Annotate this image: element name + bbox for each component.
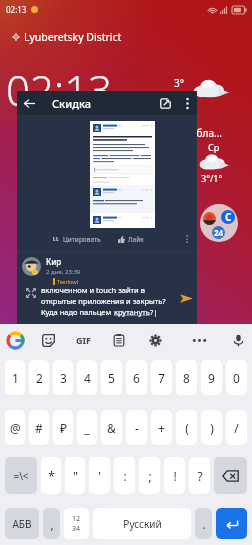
button[interactable]: / xyxy=(226,410,247,445)
button[interactable]: 5 xyxy=(101,360,122,395)
button[interactable]: : xyxy=(114,457,135,494)
staticText: Ср xyxy=(208,141,220,153)
button[interactable]: Back xyxy=(17,91,41,115)
button[interactable]: 9 xyxy=(201,360,222,395)
staticText: крутануть xyxy=(114,307,150,317)
button[interactable]: ) xyxy=(201,410,222,445)
button[interactable]: ! xyxy=(164,457,185,494)
button[interactable]: Русский xyxy=(93,508,191,539)
staticText: - xyxy=(135,420,139,436)
button[interactable]: Expand xyxy=(23,285,39,301)
staticText: @ xyxy=(10,420,21,436)
staticText: ( xyxy=(185,420,189,436)
button[interactable]: Send xyxy=(177,289,195,307)
button[interactable]: Цитировать xyxy=(51,234,103,245)
button[interactable]: . xyxy=(195,508,212,539)
staticText: GIF xyxy=(76,334,91,346)
button[interactable]: 0 xyxy=(226,360,247,395)
staticText: Lyuberetsky District xyxy=(24,30,122,44)
staticText: " xyxy=(73,468,78,484)
button[interactable]: Clipboard xyxy=(101,324,136,356)
staticText: 9 xyxy=(208,370,215,386)
staticText: Русский xyxy=(123,517,162,531)
button[interactable]: 2 xyxy=(29,360,49,395)
button[interactable]: Message options xyxy=(181,233,193,245)
staticText: Кир xyxy=(46,256,62,267)
button[interactable]: 7 xyxy=(151,360,172,395)
button[interactable]: ( xyxy=(176,410,197,445)
staticText: 2 дня, 23:39 xyxy=(46,268,81,276)
staticText: 1 xyxy=(12,370,19,386)
staticText: 3°/1° xyxy=(201,172,223,184)
staticText: 3 xyxy=(60,370,67,386)
button[interactable]: Google xyxy=(0,324,31,356)
button[interactable]: Settings xyxy=(136,324,174,356)
staticText: включенном и touch зайти в xyxy=(41,285,145,295)
staticText: 8 xyxy=(183,370,190,386)
button[interactable]: Backspace xyxy=(214,457,247,494)
staticText: ; xyxy=(148,468,152,484)
button[interactable]: ₽ xyxy=(53,410,73,445)
staticText: ! xyxy=(173,468,177,484)
button[interactable]: " xyxy=(65,457,85,494)
staticText: 02:13 xyxy=(6,4,27,15)
staticText: Tserkovl xyxy=(57,278,79,285)
staticText: 4 xyxy=(84,370,91,386)
staticText: + xyxy=(158,420,165,436)
button[interactable]: More options xyxy=(177,93,197,113)
button[interactable]: Лайк xyxy=(116,234,146,245)
button[interactable]: _ xyxy=(77,410,97,445)
button[interactable]: =\< xyxy=(5,457,37,494)
button[interactable]: ' xyxy=(89,457,110,494)
staticText: Лайк xyxy=(128,235,144,244)
button[interactable]: 3 xyxy=(53,360,73,395)
staticText: Цитировать xyxy=(63,235,101,244)
staticText: : xyxy=(123,468,127,484)
button[interactable]: App folder xyxy=(200,204,238,242)
staticText: ? xyxy=(197,468,203,484)
button[interactable]: 8 xyxy=(176,360,197,395)
button[interactable]: @ xyxy=(5,410,25,445)
staticText: / xyxy=(234,420,239,436)
staticText: C xyxy=(225,210,232,224)
staticText: 24 xyxy=(214,227,224,238)
staticText: ?| xyxy=(150,307,158,317)
button[interactable]: More xyxy=(174,324,224,356)
button[interactable]: ? xyxy=(189,457,210,494)
button[interactable]: АБВ xyxy=(5,508,39,539)
staticText: , xyxy=(50,516,54,532)
button[interactable]: * xyxy=(41,457,61,494)
button[interactable]: 6 xyxy=(126,360,147,395)
button[interactable]: ; xyxy=(139,457,160,494)
button[interactable]: 12 xyxy=(64,508,89,539)
staticText: ) xyxy=(210,420,214,436)
staticText: * xyxy=(48,468,55,484)
button[interactable]: Emoji xyxy=(31,324,66,356)
button[interactable]: GIF xyxy=(66,324,101,356)
button[interactable]: Voice input xyxy=(224,324,252,356)
button[interactable]: + xyxy=(151,410,172,445)
button[interactable]: # xyxy=(29,410,49,445)
button[interactable]: & xyxy=(101,410,122,445)
staticText: открытые приложения и закрыть? xyxy=(41,296,166,306)
staticText: Обла... xyxy=(189,126,223,140)
button[interactable]: Share xyxy=(153,91,177,115)
staticText: АБВ xyxy=(12,517,32,531)
staticText: =\< xyxy=(13,469,29,483)
button[interactable]: , xyxy=(43,508,60,539)
button[interactable]: 1 xyxy=(5,360,25,395)
staticText: 5 xyxy=(108,370,115,386)
staticText: Скидка xyxy=(52,96,92,111)
staticText: 0 xyxy=(233,370,240,386)
button[interactable]: Enter xyxy=(216,508,247,539)
staticText: 6 xyxy=(133,370,140,386)
staticText: 7 xyxy=(158,370,165,386)
staticText: # xyxy=(35,420,43,436)
staticText: 2 xyxy=(36,370,43,386)
staticText: 02:13 xyxy=(6,61,113,118)
button[interactable]: - xyxy=(126,410,147,445)
staticText: Куда надо пальцем xyxy=(41,307,114,317)
staticText: ' xyxy=(98,468,101,484)
button[interactable]: 4 xyxy=(77,360,97,395)
staticText: _ xyxy=(84,420,90,436)
